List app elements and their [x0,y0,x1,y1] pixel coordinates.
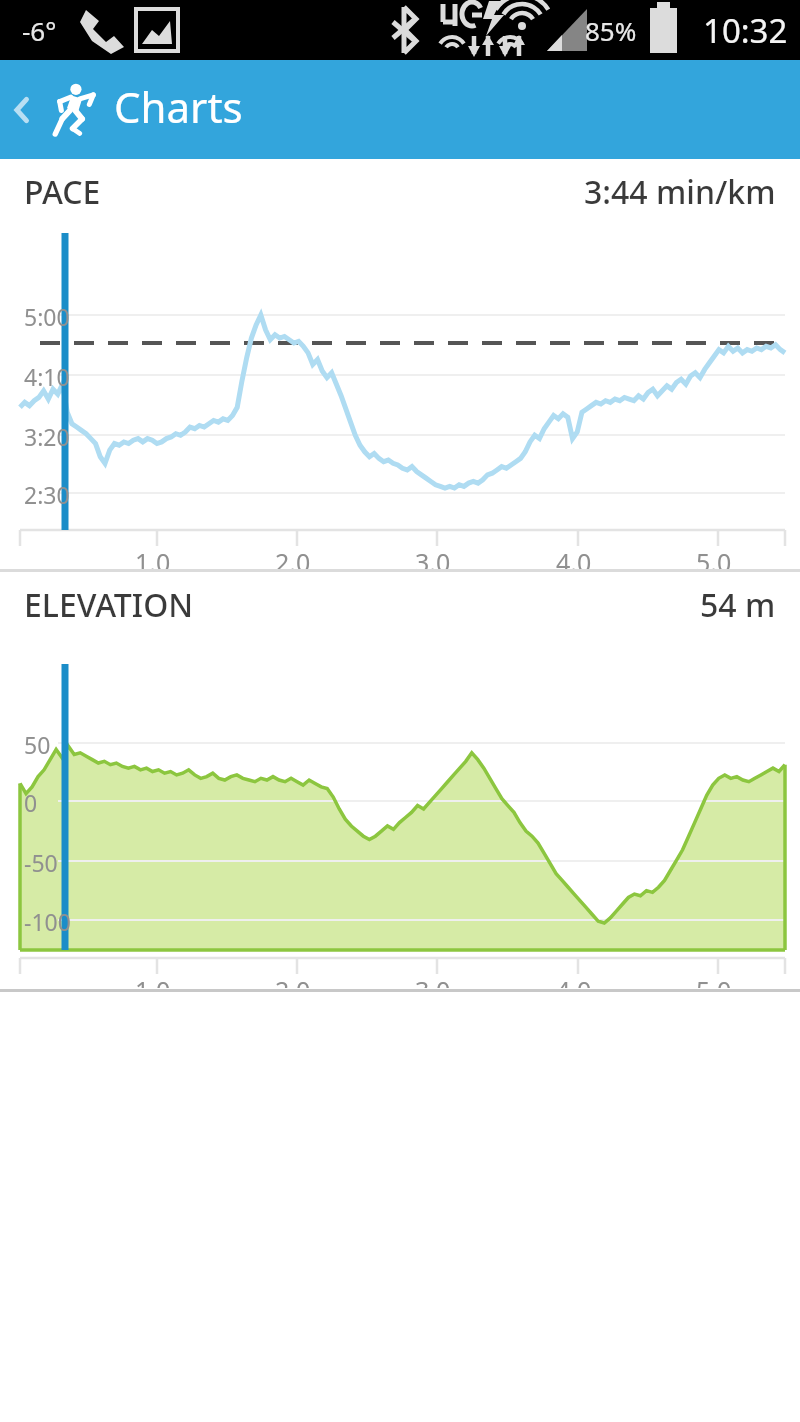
staticText: 5.0 [696,973,732,988]
staticText: 2.0 [275,973,311,988]
button[interactable]: PACE [0,159,800,225]
staticText: 1.0 [135,545,171,569]
button[interactable]: Back [0,60,44,159]
staticText: 54 m [700,583,776,627]
staticText: 2.0 [275,545,311,569]
staticText: -50 [24,847,58,878]
staticText: 4.0 [556,973,592,988]
staticText: -100 [24,906,71,937]
staticText: 2:30 [24,479,70,510]
staticText: 0 [24,787,38,818]
staticText: 4.0 [556,545,592,569]
staticText: -6° [22,13,57,48]
staticText: ELEVATION [24,583,194,627]
staticText: 3:44 min/km [584,170,776,214]
button[interactable]: ELEVATION [0,572,800,638]
staticText: 5.0 [696,545,732,569]
staticText: 5:00 [24,301,70,332]
staticText: 4:10 [24,361,70,392]
staticText: 3:20 [24,421,70,452]
staticText: 85% [585,13,637,48]
staticText: 1.0 [135,973,171,988]
staticText: 10:32 [703,8,788,53]
staticText: PACE [24,170,101,214]
staticText: Charts [114,78,243,135]
staticText: 50 [24,729,51,760]
staticText: 3.0 [415,973,451,988]
staticText: 3.0 [415,545,451,569]
